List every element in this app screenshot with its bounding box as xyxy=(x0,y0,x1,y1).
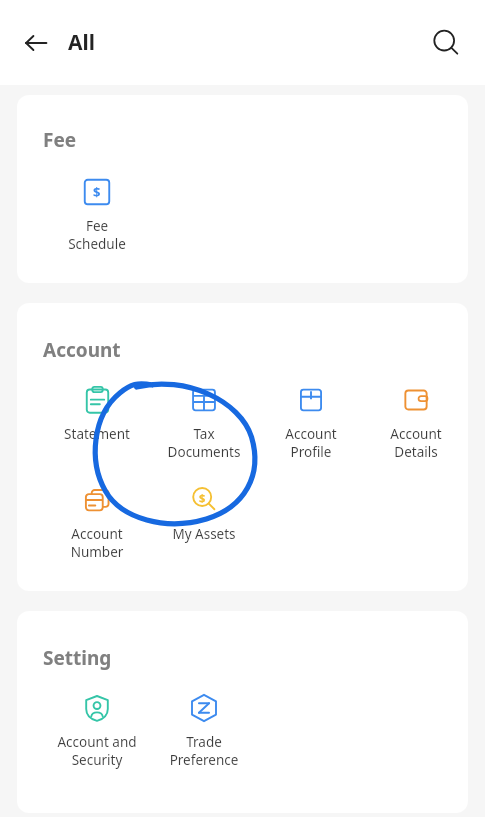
button[interactable]: Account Profile xyxy=(257,379,364,465)
button[interactable]: Trade Preference xyxy=(150,687,257,773)
staticText: Fee xyxy=(43,127,77,153)
staticText: Account xyxy=(43,337,121,363)
button[interactable]: $ xyxy=(43,171,150,257)
staticText: Trade Preference xyxy=(152,733,256,769)
staticText: Account Profile xyxy=(259,425,363,461)
staticText: Setting xyxy=(43,645,112,671)
staticText: Account Details xyxy=(364,425,468,461)
staticText: $ xyxy=(93,183,101,201)
staticText: $ xyxy=(199,490,206,505)
button[interactable]: Statement xyxy=(43,379,150,447)
staticText: Statement xyxy=(45,425,149,443)
button[interactable]: Account Details xyxy=(364,379,468,465)
button[interactable]: Search xyxy=(423,20,469,66)
staticText: All xyxy=(68,28,96,57)
button[interactable]: Account Number xyxy=(43,479,150,565)
button[interactable]: Account and Security xyxy=(43,687,150,773)
staticText: Account and Security xyxy=(45,733,149,769)
staticText: Fee Schedule xyxy=(45,217,149,253)
button[interactable]: Back xyxy=(14,21,58,65)
staticText: My Assets xyxy=(152,525,256,543)
staticText: Account Number xyxy=(45,525,149,561)
button[interactable]: Tax Documents xyxy=(150,379,257,465)
staticText: Tax Documents xyxy=(152,425,256,461)
button[interactable]: $ xyxy=(150,479,257,547)
